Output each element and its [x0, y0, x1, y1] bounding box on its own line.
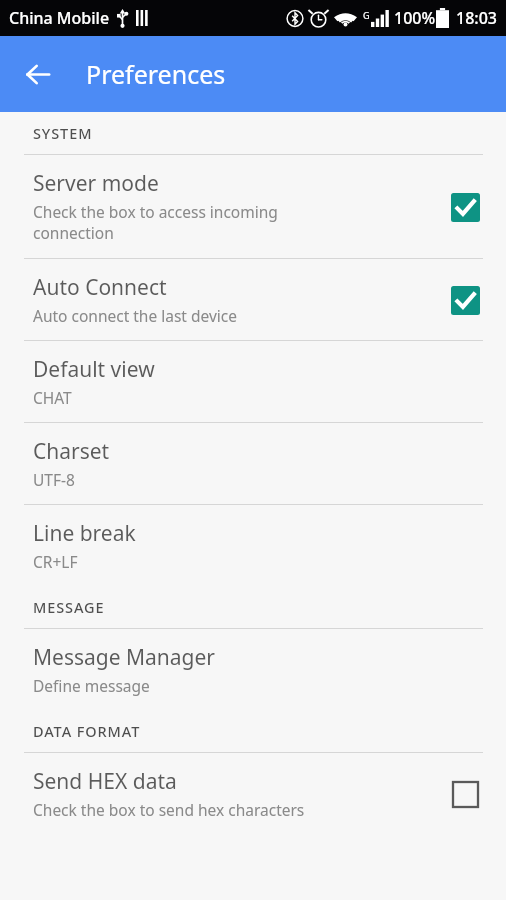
staticText: Charset: [33, 437, 110, 466]
button[interactable]: Default view: [0, 341, 506, 423]
staticText: G: [363, 9, 370, 21]
staticText: Check the box to access incoming connect…: [33, 201, 278, 244]
staticText: DATA FORMAT: [33, 721, 141, 741]
button[interactable]: Auto Connect: [0, 259, 506, 341]
staticText: 100%: [394, 7, 436, 29]
staticText: Auto connect the last device: [33, 305, 237, 326]
staticText: Default view: [33, 355, 155, 384]
staticText: Auto Connect: [33, 273, 167, 302]
staticText: Define message: [33, 675, 150, 696]
staticText: Send HEX data: [33, 767, 177, 796]
button[interactable]: Charset: [0, 423, 506, 505]
staticText: MESSAGE: [33, 597, 105, 617]
staticText: Message Manager: [33, 643, 216, 672]
button[interactable]: Line break: [0, 505, 506, 586]
staticText: CHAT: [33, 387, 72, 408]
staticText: 18:03: [456, 7, 497, 29]
staticText: Preferences: [86, 57, 226, 91]
staticText: SYSTEM: [33, 123, 93, 143]
button[interactable]: Message Manager: [0, 629, 506, 710]
button[interactable]: Back: [13, 50, 61, 98]
staticText: UTF-8: [33, 469, 75, 490]
staticText: China Mobile: [9, 7, 110, 29]
staticText: Check the box to send hex characters: [33, 799, 305, 820]
button[interactable]: Send HEX data: [0, 753, 506, 834]
staticText: Server mode: [33, 169, 159, 198]
staticText: Line break: [33, 519, 136, 548]
staticText: CR+LF: [33, 551, 78, 572]
button[interactable]: Server mode: [0, 155, 506, 259]
